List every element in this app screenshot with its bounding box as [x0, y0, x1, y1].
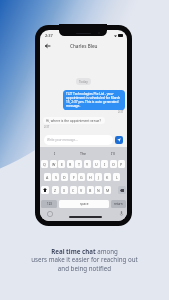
staticText: E	[61, 162, 63, 167]
button[interactable]: Write your message...	[44, 135, 113, 145]
staticText: H	[89, 175, 92, 180]
button[interactable]: Dictate	[118, 210, 125, 217]
staticText: 123	[47, 202, 52, 206]
button[interactable]: Shift	[41, 186, 49, 194]
button[interactable]: D	[61, 173, 68, 181]
staticText: P	[120, 162, 123, 167]
staticText: TLIT Technologies Pte Ltd - your appoint…	[66, 92, 122, 108]
button[interactable]: A	[44, 173, 51, 181]
staticText: return	[114, 202, 123, 206]
button[interactable]: I'll	[98, 148, 127, 158]
button[interactable]: P	[118, 160, 125, 168]
staticText: Z	[54, 188, 57, 193]
staticText: V	[80, 188, 83, 193]
staticText: 2:37	[118, 110, 124, 114]
staticText: 2:37	[44, 125, 50, 129]
staticText: The	[80, 151, 87, 156]
button[interactable]: T	[75, 160, 82, 168]
button[interactable]: 123	[41, 200, 57, 208]
button[interactable]: O	[110, 160, 117, 168]
button[interactable]: G	[78, 173, 85, 181]
staticText: K	[106, 175, 109, 180]
staticText: Write your message...	[47, 138, 78, 142]
button[interactable]: Q	[41, 160, 48, 168]
staticText: Today	[79, 80, 88, 84]
staticText: S	[55, 175, 57, 180]
staticText: L	[116, 175, 118, 180]
button[interactable]: space	[59, 200, 109, 208]
staticText: I'll	[111, 151, 115, 156]
staticText: Real time chat among users make it easie…	[31, 247, 138, 273]
staticText: C	[72, 188, 75, 193]
staticText: O	[112, 162, 115, 167]
button[interactable]: M	[104, 186, 111, 194]
button[interactable]: C	[70, 186, 77, 194]
button[interactable]: The	[69, 148, 98, 158]
button[interactable]: Send	[115, 136, 123, 144]
staticText: J	[98, 175, 99, 180]
staticText: 2:37	[45, 33, 53, 38]
staticText: N	[97, 188, 100, 193]
button[interactable]: V	[78, 186, 85, 194]
button[interactable]: X	[61, 186, 68, 194]
staticText: space	[80, 202, 89, 206]
staticText: Q	[43, 162, 46, 167]
button[interactable]: E	[58, 160, 65, 168]
staticText: Charles Bleu	[70, 43, 98, 49]
button[interactable]: Y	[84, 160, 91, 168]
staticText: W	[52, 162, 56, 167]
button[interactable]: R	[67, 160, 74, 168]
staticText: T	[78, 162, 80, 167]
button[interactable]: I	[40, 148, 69, 158]
button[interactable]: Back	[43, 41, 52, 50]
staticText: F	[73, 175, 75, 180]
staticText: I	[54, 151, 56, 156]
staticText: X	[63, 188, 66, 193]
button[interactable]: S	[52, 173, 59, 181]
staticText: Y	[86, 162, 89, 167]
button[interactable]: W	[50, 160, 57, 168]
button[interactable]: B	[87, 186, 94, 194]
staticText: R	[69, 162, 72, 167]
button[interactable]: Z	[52, 186, 59, 194]
staticText: G	[80, 175, 83, 180]
button[interactable]: U	[93, 160, 100, 168]
button[interactable]: L	[113, 173, 120, 181]
staticText: B	[89, 188, 92, 193]
button[interactable]: return	[111, 200, 126, 208]
button[interactable]: Emoji	[46, 210, 53, 217]
button[interactable]: Backspace	[118, 186, 126, 194]
button[interactable]: I	[101, 160, 108, 168]
staticText: M	[106, 188, 110, 193]
staticText: D	[63, 175, 66, 180]
staticText: A	[46, 175, 49, 180]
button[interactable]: K	[104, 173, 111, 181]
button[interactable]: N	[95, 186, 102, 194]
button[interactable]: J	[95, 173, 102, 181]
staticText: U	[95, 162, 98, 167]
staticText: Hi, where is the appointment venue?	[46, 119, 101, 123]
button[interactable]: F	[70, 173, 77, 181]
button[interactable]: H	[87, 173, 94, 181]
staticText: I	[104, 162, 106, 167]
